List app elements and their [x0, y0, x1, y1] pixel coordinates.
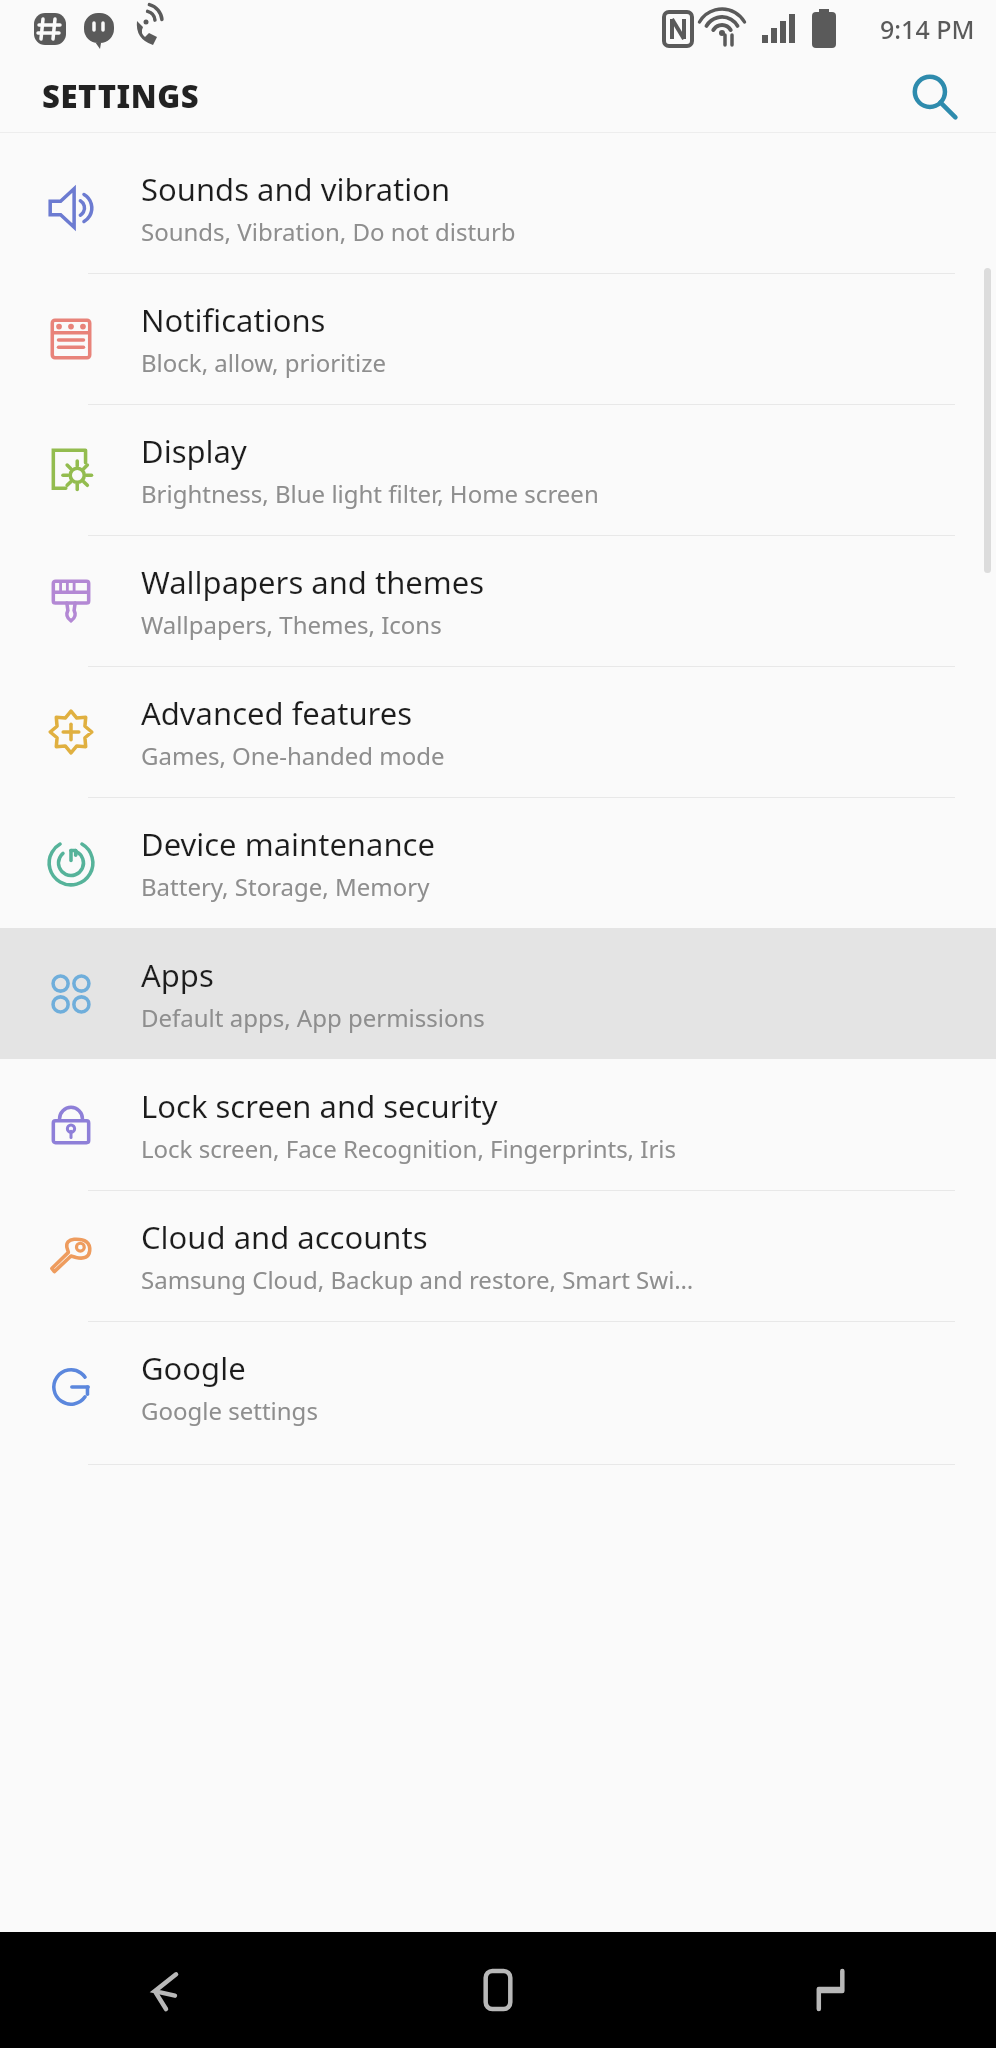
staticText: Notifications: [141, 299, 326, 341]
staticText: SETTINGS: [42, 75, 200, 117]
button[interactable]: Lock screen and security: [0, 1059, 996, 1190]
button[interactable]: Recent apps: [664, 1932, 996, 2048]
button[interactable]: Google: [0, 1321, 996, 1452]
button[interactable]: Cloud and accounts: [0, 1190, 996, 1321]
staticText: Wallpapers, Themes, Icons: [141, 608, 442, 641]
staticText: Advanced features: [141, 692, 413, 734]
staticText: Google settings: [141, 1394, 318, 1427]
staticText: Games, One-handed mode: [141, 739, 445, 772]
staticText: 9:14 PM: [880, 12, 975, 46]
staticText: Lock screen and security: [141, 1085, 498, 1127]
staticText: Google: [141, 1347, 246, 1389]
button[interactable]: Display: [0, 404, 996, 535]
staticText: Samsung Cloud, Backup and restore, Smart…: [141, 1263, 694, 1296]
staticText: Brightness, Blue light filter, Home scre…: [141, 477, 599, 510]
staticText: Wallpapers and themes: [141, 561, 485, 603]
button[interactable]: Sounds and vibration: [0, 142, 996, 273]
button[interactable]: Home: [332, 1932, 664, 2048]
button[interactable]: Back: [0, 1932, 332, 2048]
staticText: Display: [141, 430, 247, 472]
staticText: Cloud and accounts: [141, 1216, 428, 1258]
button[interactable]: Advanced features: [0, 666, 996, 797]
button[interactable]: Wallpapers and themes: [0, 535, 996, 666]
button[interactable]: Search: [898, 61, 968, 131]
staticText: Default apps, App permissions: [141, 1001, 485, 1034]
staticText: Sounds, Vibration, Do not disturb: [141, 215, 516, 248]
button[interactable]: Device maintenance: [0, 797, 996, 928]
staticText: Apps: [141, 954, 214, 996]
button[interactable]: Apps: [0, 928, 996, 1059]
staticText: Device maintenance: [141, 823, 435, 865]
staticText: Block, allow, prioritize: [141, 346, 386, 379]
staticText: Battery, Storage, Memory: [141, 870, 430, 903]
staticText: Sounds and vibration: [141, 168, 451, 210]
button[interactable]: Notifications: [0, 273, 996, 404]
staticText: Lock screen, Face Recognition, Fingerpri…: [141, 1132, 677, 1165]
